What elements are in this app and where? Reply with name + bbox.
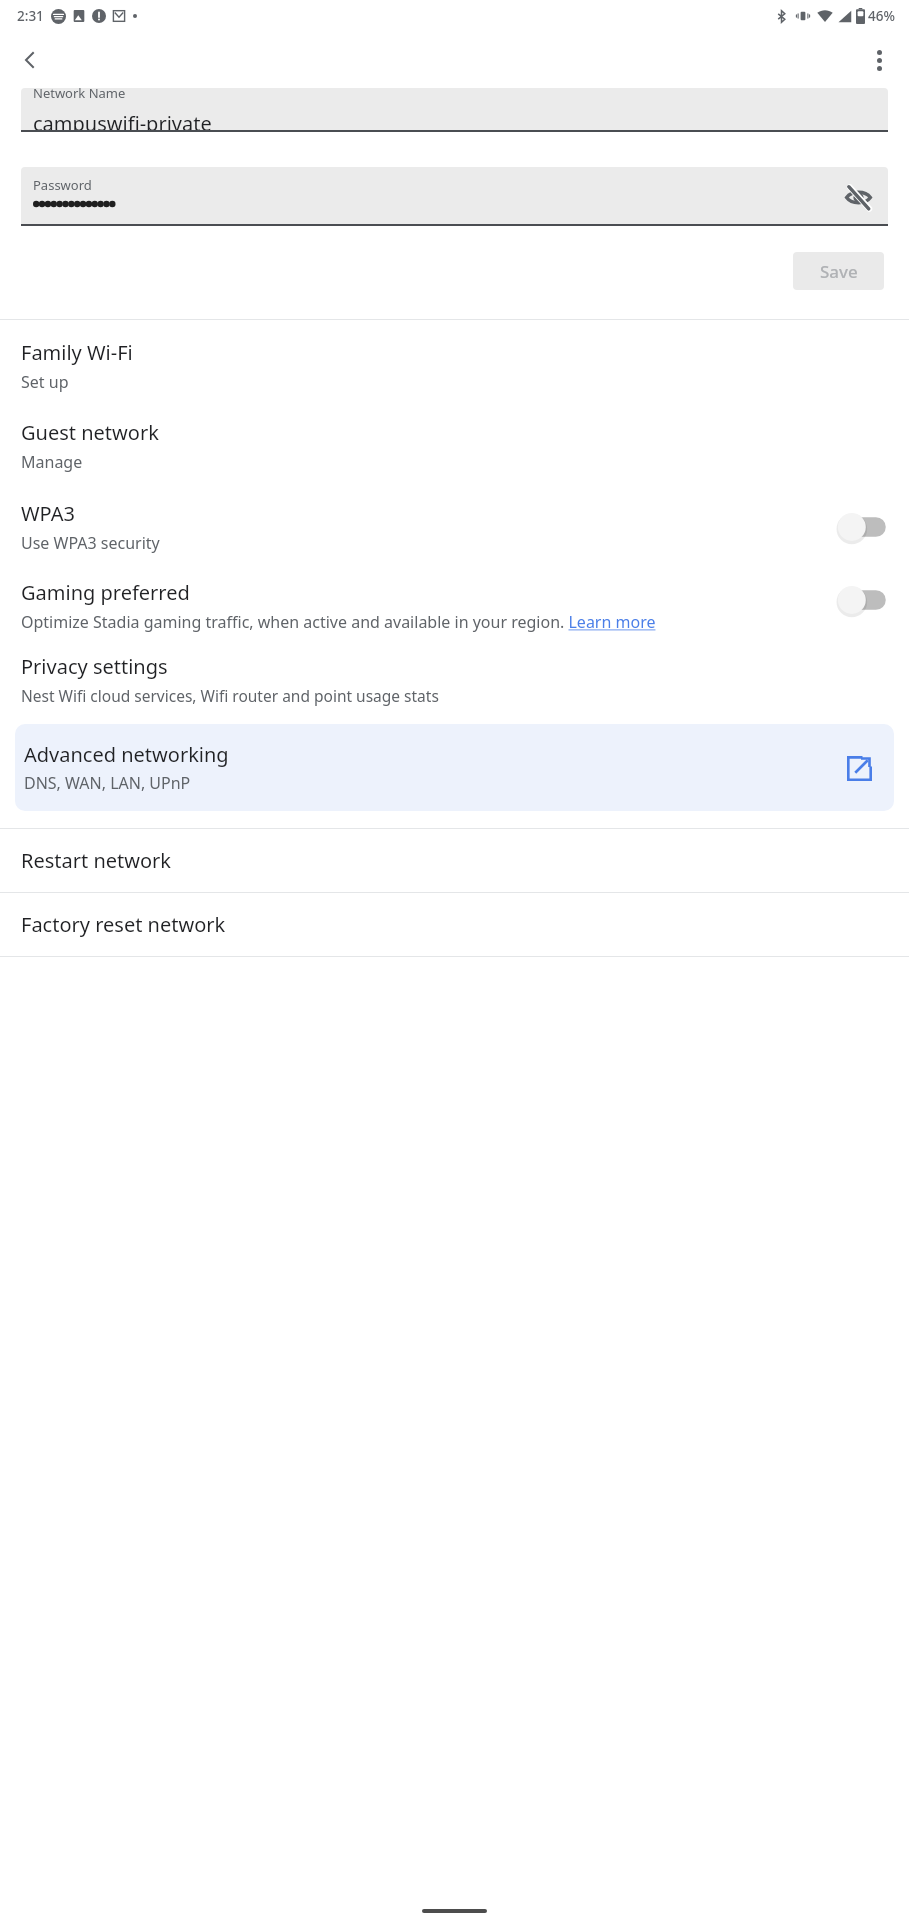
staticText: Nest Wifi cloud services, Wifi router an… [21,685,439,706]
button[interactable]: Back [6,36,54,84]
staticText: Password [33,176,92,194]
staticText: Guest network [21,419,159,446]
staticText: WPA3 [21,500,75,527]
button[interactable]: Password [21,167,888,226]
button[interactable]: Privacy settings [0,651,909,708]
staticText: Network Name [33,84,126,102]
staticText: Set up [21,371,69,393]
staticText: Manage [21,451,83,473]
staticText: DNS, WAN, LAN, UPnP [24,772,191,794]
button[interactable]: Save [793,252,884,290]
button[interactable]: Guest network [0,417,909,475]
staticText: Save [820,260,858,283]
button[interactable]: More options [855,36,903,84]
button[interactable]: Advanced networking [15,724,894,811]
button[interactable]: Toggle [832,510,888,544]
button[interactable]: WPA3 [0,498,909,556]
button[interactable]: Family Wi-Fi [0,337,909,395]
staticText: Optimize Stadia gaming traffic, when act… [21,611,656,633]
staticText: Factory reset network [21,911,226,938]
staticText: campuswifi-private [33,110,212,132]
staticText: Restart network [21,847,172,874]
button[interactable]: Toggle [832,583,888,617]
staticText: Gaming preferred [21,579,190,606]
button[interactable]: Show password [836,175,880,219]
staticText: 2:31 [17,7,44,25]
staticText: Privacy settings [21,653,168,680]
staticText: 46% [868,7,895,25]
button[interactable]: Gaming preferred [0,577,909,635]
staticText: Advanced networking [24,741,229,768]
button[interactable]: Network Name [21,88,888,132]
staticText: Use WPA3 security [21,532,160,554]
button[interactable]: Factory reset network [0,893,909,956]
button[interactable]: Restart network [0,829,909,892]
staticText: Family Wi-Fi [21,339,133,366]
